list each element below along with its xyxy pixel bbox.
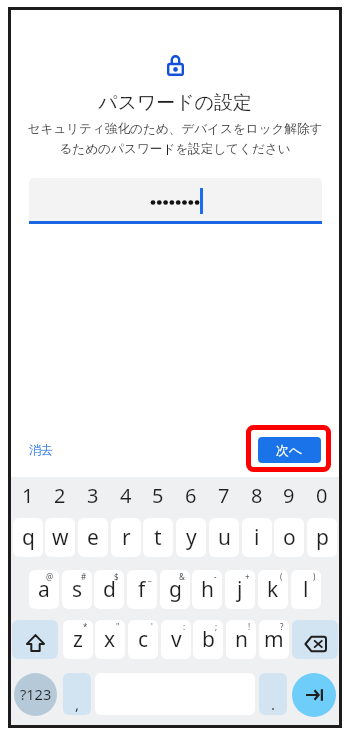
staticText: ( [280,571,283,582]
button[interactable]: 0 [307,477,337,513]
staticText: z [73,625,83,654]
button[interactable]: 4 [111,477,141,513]
staticText: * [83,621,88,632]
button[interactable]: o [274,518,304,557]
button[interactable]: Enter [292,673,336,717]
staticText: r [122,523,131,552]
button[interactable]: i [242,518,272,557]
staticText: m [264,625,284,654]
staticText: l [303,575,309,604]
button[interactable]: r [111,518,141,557]
button[interactable]: ?123 [14,673,57,716]
button[interactable]: w [45,518,75,557]
button[interactable]: , [63,673,91,715]
staticText: 6 [185,482,197,509]
staticText: " [116,621,120,632]
button[interactable]: 消去 [23,436,59,462]
staticText: @ [46,571,54,582]
staticText: b [202,625,215,654]
staticText: _ [148,571,152,582]
staticText: ' [151,621,153,632]
staticText: q [22,523,35,552]
staticText: h [201,575,214,604]
staticText: . [271,694,276,714]
staticText: # [81,571,87,582]
button[interactable]: Backspace [292,620,338,659]
staticText: - [214,571,217,582]
staticText: ? [280,621,284,632]
button[interactable]: s [62,570,92,609]
staticText: u [218,523,231,552]
button[interactable]: 1 [13,477,43,513]
button[interactable]: f [127,570,157,609]
button[interactable]: 次へ [258,437,321,463]
staticText: 7 [218,482,230,509]
staticText: 9 [283,482,295,509]
button[interactable]: p [307,518,337,557]
button[interactable]: 7 [209,477,239,513]
staticText: g [169,575,182,604]
staticText: s [72,575,83,604]
staticText: t [154,523,162,552]
button[interactable]: 9 [274,477,304,513]
button[interactable]: x [95,620,125,659]
button[interactable]: h [192,570,222,609]
staticText: ; [215,621,218,632]
staticText: f [138,575,146,604]
button[interactable]: l [291,570,321,609]
staticText: i [254,523,260,552]
button[interactable]: 8 [242,477,272,513]
button[interactable]: b [193,620,223,659]
staticText: , [75,694,80,714]
staticText: & [179,571,185,582]
button[interactable]: t [143,518,173,557]
button[interactable]: 5 [143,477,173,513]
staticText: ?123 [20,684,52,704]
button[interactable]: 3 [78,477,108,513]
button[interactable] [29,178,322,221]
button[interactable]: m [259,620,289,659]
staticText: 消去 [29,442,53,457]
staticText: 8 [251,482,263,509]
button[interactable]: k [258,570,288,609]
staticText: x [104,625,116,654]
staticText: j [237,575,243,604]
button[interactable]: 6 [176,477,206,513]
button[interactable]: g [160,570,190,609]
staticText: d [103,575,116,604]
staticText: 4 [120,482,132,509]
staticText: 3 [87,482,99,509]
staticText: ) [313,571,316,582]
button[interactable]: d [94,570,124,609]
staticText: パスワードの設定 [11,91,339,115]
button[interactable]: a [29,570,59,609]
staticText: e [87,523,99,552]
staticText: k [267,575,279,604]
staticText: p [316,523,329,552]
staticText: v [171,625,182,654]
staticText: 1 [22,482,34,509]
staticText: w [52,523,69,552]
button[interactable]: c [128,620,158,659]
button[interactable]: u [209,518,239,557]
button[interactable]: v [161,620,191,659]
staticText: n [235,625,248,654]
button[interactable]: . [259,673,287,715]
staticText: 5 [152,482,164,509]
staticText: 次へ [276,442,303,458]
button[interactable]: e [78,518,108,557]
staticText: c [138,625,149,654]
button[interactable]: n [226,620,256,659]
button[interactable]: y [176,518,206,557]
staticText: a [38,575,50,604]
button[interactable]: 2 [45,477,75,513]
staticText: o [283,523,296,552]
staticText: ! [248,621,251,632]
button[interactable]: q [13,518,43,557]
button[interactable]: Shift [12,620,58,659]
button[interactable]: j [225,570,255,609]
button[interactable]: z [63,620,93,659]
staticText: : [183,621,186,632]
staticText: y [186,523,197,552]
